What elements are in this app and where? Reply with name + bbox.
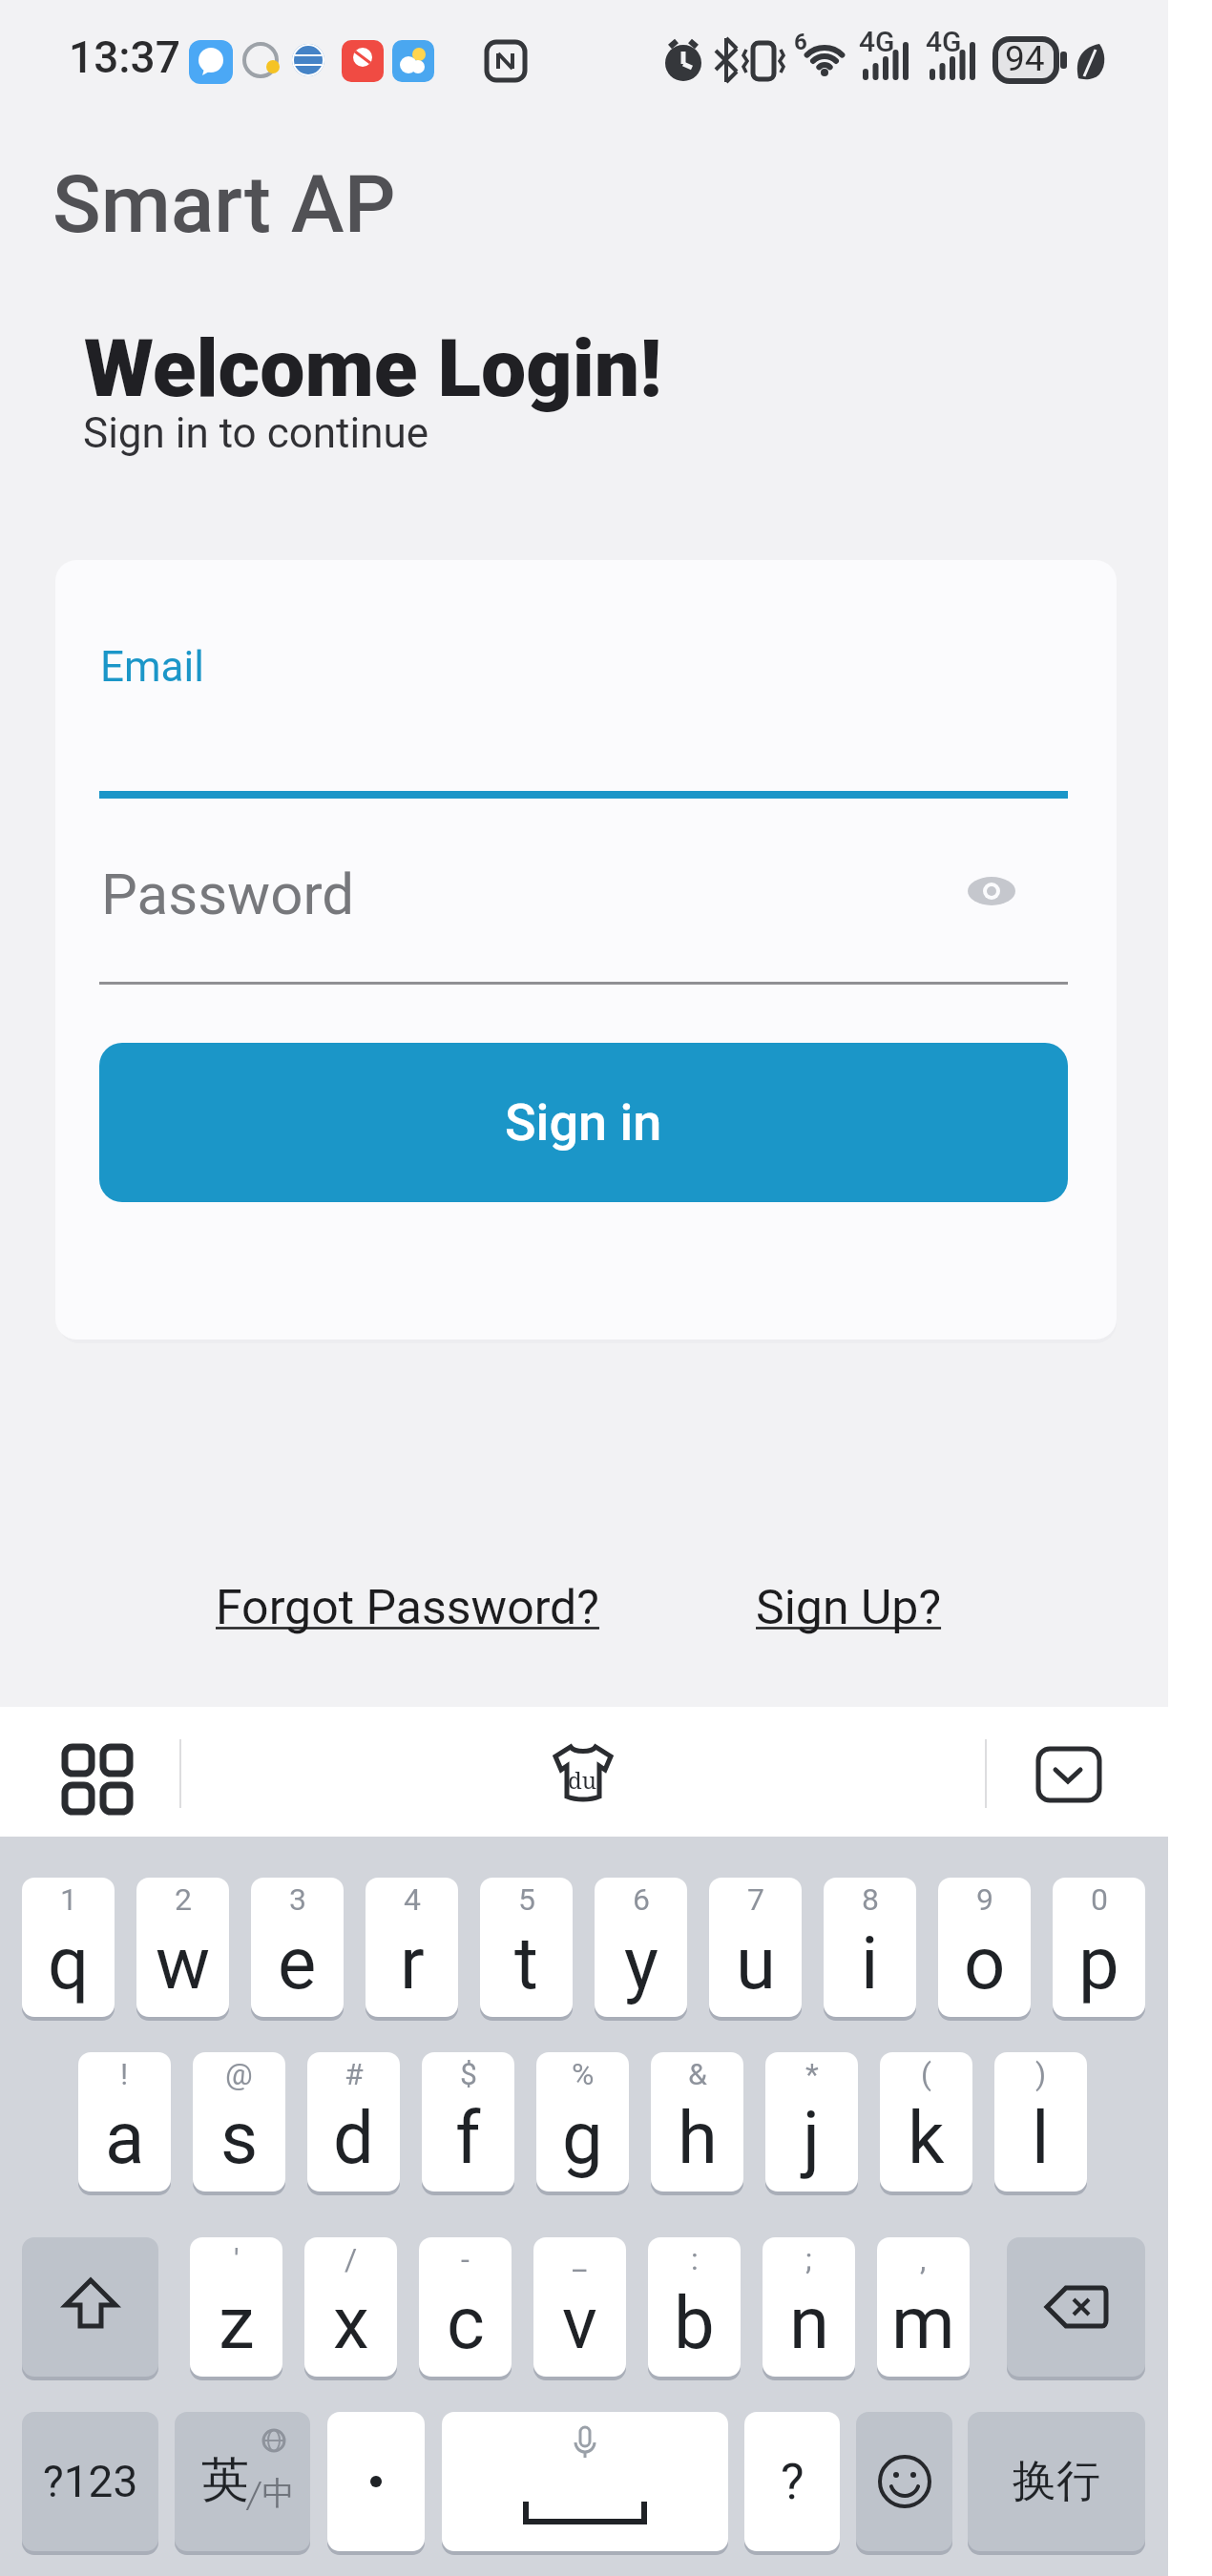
staticText: /中 [245, 2473, 295, 2514]
button[interactable]: ? [744, 2412, 840, 2551]
staticText: / [345, 2241, 358, 2277]
button[interactable]: 4 [366, 1878, 458, 2017]
staticText: 2 [175, 1881, 192, 1918]
staticText: j [803, 2095, 821, 2180]
button[interactable]: @ [193, 2052, 285, 2192]
staticText: # [345, 2056, 364, 2092]
staticText: d [333, 2095, 374, 2180]
button[interactable]: _ [533, 2237, 626, 2377]
staticText: b [674, 2280, 715, 2365]
staticText: , [920, 2241, 927, 2277]
button[interactable]: : [648, 2237, 741, 2377]
staticText: Smart AP [52, 157, 396, 251]
button[interactable]: / [304, 2237, 397, 2377]
staticText: - [461, 2241, 470, 2277]
staticText: Sign in to continue [83, 408, 429, 458]
staticText: ' [234, 2241, 240, 2277]
button[interactable]: ; [763, 2237, 855, 2377]
staticText: 9 [976, 1881, 993, 1918]
staticText: 6 [633, 1881, 650, 1918]
staticText: t [514, 1921, 538, 2005]
button[interactable]: ' [190, 2237, 282, 2377]
button[interactable] [552, 1741, 615, 1804]
button[interactable]: Sign Up? [658, 1565, 1039, 1651]
button[interactable]: 换行 [968, 2412, 1145, 2551]
button[interactable]: , [877, 2237, 970, 2377]
button[interactable] [968, 873, 1015, 909]
staticText: 94 [1005, 38, 1045, 79]
button[interactable]: 1 [22, 1878, 115, 2017]
staticText: h [678, 2095, 718, 2180]
button[interactable] [442, 2412, 728, 2551]
staticText: 5 [518, 1881, 535, 1918]
staticText: Sign Up? [756, 1580, 942, 1636]
button[interactable]: 7 [709, 1878, 802, 2017]
button[interactable]: & [651, 2052, 743, 2192]
button[interactable]: 8 [824, 1878, 916, 2017]
button[interactable] [1007, 2237, 1145, 2377]
staticText: Welcome Login! [84, 322, 662, 415]
staticText: 13:37 [69, 31, 180, 83]
staticText: & [688, 2056, 707, 2092]
button[interactable] [61, 1743, 134, 1816]
staticText: ? [781, 2453, 805, 2511]
staticText: e [278, 1921, 317, 2005]
button[interactable]: ) [994, 2052, 1087, 2192]
button[interactable]: - [419, 2237, 512, 2377]
button[interactable]: Forgot Password? [169, 1565, 646, 1651]
button[interactable]: 2 [136, 1878, 229, 2017]
staticText: s [220, 2095, 259, 2180]
staticText: n [789, 2280, 829, 2365]
staticText: r [400, 1921, 425, 2005]
staticText: 英 [201, 2450, 249, 2510]
staticText: 7 [747, 1881, 764, 1918]
staticText: i [861, 1921, 879, 2005]
staticText: _ [573, 2241, 587, 2277]
staticText: y [624, 1921, 658, 2005]
staticText: 换行 [1013, 2454, 1100, 2509]
staticText: ) [1035, 2056, 1047, 2092]
staticText: ! [120, 2056, 129, 2092]
staticText: z [219, 2280, 255, 2365]
button[interactable]: ! [78, 2052, 171, 2192]
staticText: k [908, 2095, 945, 2180]
staticText: 3 [289, 1881, 306, 1918]
button[interactable]: 6 [595, 1878, 687, 2017]
staticText: ; [805, 2241, 812, 2277]
staticText: 4 [404, 1881, 421, 1918]
button[interactable]: ( [880, 2052, 972, 2192]
button[interactable] [856, 2412, 952, 2551]
staticText: 4G [926, 25, 962, 58]
button[interactable]: $ [422, 2052, 514, 2192]
staticText: x [333, 2280, 369, 2365]
staticText: w [156, 1921, 211, 2005]
staticText: ?123 [43, 2456, 138, 2507]
staticText: c [447, 2280, 485, 2365]
staticText: 4G [859, 25, 895, 58]
staticText: g [562, 2095, 603, 2180]
staticText: $ [460, 2056, 477, 2092]
button[interactable]: % [536, 2052, 629, 2192]
button[interactable] [22, 2237, 158, 2377]
button[interactable]: Sign in [99, 1043, 1068, 1202]
button[interactable]: 5 [480, 1878, 573, 2017]
button[interactable]: ?123 [22, 2412, 158, 2551]
staticText: : [691, 2241, 699, 2277]
button[interactable]: * [765, 2052, 858, 2192]
staticText: * [805, 2056, 819, 2092]
staticText: 1 [60, 1881, 77, 1918]
button[interactable] [1036, 1747, 1101, 1802]
staticText: l [1032, 2095, 1050, 2180]
button[interactable]: 3 [251, 1878, 344, 2017]
staticText: 6 [794, 29, 807, 55]
staticText: o [964, 1921, 1006, 2005]
button[interactable]: 英 [175, 2412, 310, 2551]
button[interactable]: 0 [1053, 1878, 1145, 2017]
button[interactable] [327, 2412, 425, 2551]
button[interactable]: # [307, 2052, 400, 2192]
staticText: % [572, 2056, 595, 2092]
staticText: a [105, 2095, 145, 2180]
button[interactable]: 9 [938, 1878, 1031, 2017]
staticText: Sign in [505, 1092, 662, 1153]
staticText: f [455, 2095, 481, 2180]
